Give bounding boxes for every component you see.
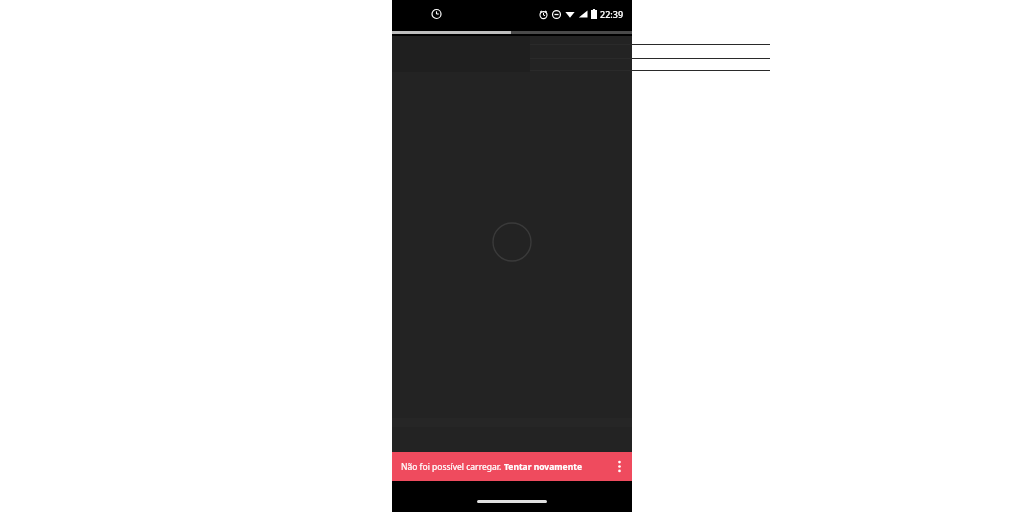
button[interactable]: Início bbox=[477, 500, 547, 503]
staticText: Não foi possível carregar. bbox=[401, 461, 504, 473]
button[interactable]: Mais opções bbox=[606, 452, 632, 481]
button[interactable]: Não foi possível carregar. bbox=[392, 452, 606, 481]
other: Carregando bbox=[492, 222, 532, 262]
staticText: 22:39 bbox=[600, 8, 624, 20]
staticText: Tentar novamente bbox=[504, 461, 582, 473]
